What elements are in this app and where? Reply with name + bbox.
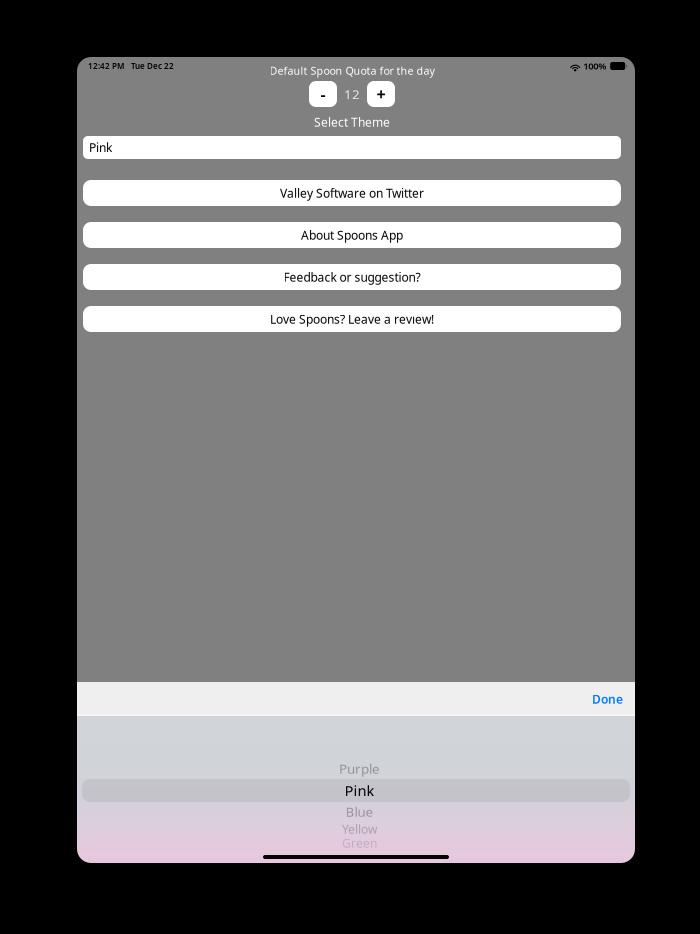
staticText: 12:42 PM (88, 61, 124, 71)
button[interactable]: About Spoons App (83, 222, 621, 248)
button[interactable]: Increase (367, 81, 395, 107)
button[interactable]: Purple (77, 758, 635, 779)
staticText: Green (342, 835, 377, 851)
button[interactable]: Pink (77, 779, 635, 802)
button[interactable]: Decrease (309, 81, 337, 107)
staticText: - (320, 83, 325, 105)
button[interactable]: Yellow (77, 821, 635, 837)
staticText: Valley Software on Twitter (280, 185, 424, 201)
staticText: Yellow (342, 821, 377, 837)
staticText: Love Spoons? Leave a review! (270, 311, 434, 327)
button[interactable]: Valley Software on Twitter (83, 180, 621, 206)
staticText: + (376, 83, 385, 105)
staticText: Select Theme (314, 114, 390, 130)
staticText: Pink (89, 139, 112, 155)
button[interactable]: Love Spoons? Leave a review! (83, 306, 621, 332)
staticText: Purple (339, 760, 380, 777)
button[interactable]: Blue (77, 802, 635, 821)
staticText: 100% (583, 60, 606, 72)
staticText: Pink (344, 781, 374, 800)
staticText: Default Spoon Quota for the day (269, 63, 434, 78)
staticText: About Spoons App (301, 227, 403, 243)
staticText: Tue Dec 22 (131, 61, 174, 71)
button[interactable]: Feedback or suggestion? (83, 264, 621, 290)
button[interactable]: Pink (83, 136, 621, 159)
button[interactable]: Done (580, 683, 635, 715)
staticText: Done (592, 691, 623, 707)
staticText: Feedback or suggestion? (283, 269, 420, 285)
staticText: 12 (344, 85, 360, 103)
staticText: Blue (345, 803, 373, 820)
button[interactable]: Green (77, 837, 635, 849)
